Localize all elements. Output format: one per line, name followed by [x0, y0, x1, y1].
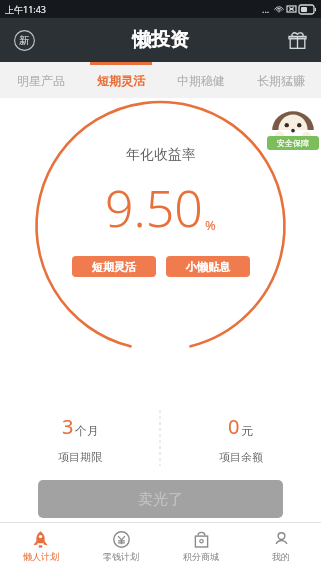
- button[interactable]: 积分商城: [161, 523, 241, 569]
- staticText: ...: [262, 3, 270, 15]
- button[interactable]: 短期灵活: [81, 62, 161, 98]
- staticText: 安全保障: [277, 138, 309, 148]
- button[interactable]: 短期灵活: [72, 256, 156, 277]
- staticText: 懒人计划: [23, 551, 59, 562]
- staticText: 短期灵活: [97, 73, 145, 88]
- staticText: 中期稳健: [177, 73, 225, 88]
- staticText: 小懒贴息: [186, 260, 230, 274]
- staticText: 项目余额: [219, 450, 263, 464]
- button[interactable]: 礼物: [281, 24, 313, 56]
- button[interactable]: 零钱计划: [81, 523, 161, 569]
- staticText: 长期猛赚: [257, 73, 305, 88]
- staticText: 零钱计划: [103, 551, 139, 562]
- staticText: 积分商城: [183, 551, 219, 562]
- staticText: 我的: [272, 551, 290, 562]
- staticText: 项目期限: [58, 450, 102, 464]
- button[interactable]: 小懒贴息: [166, 256, 250, 277]
- staticText: 3: [62, 413, 74, 440]
- staticText: 懒投资: [132, 28, 189, 52]
- staticText: 元: [241, 423, 253, 438]
- staticText: 个月: [75, 423, 99, 438]
- button[interactable]: 长期猛赚: [241, 62, 321, 98]
- staticText: 明星产品: [17, 73, 65, 88]
- button[interactable]: 懒人计划: [0, 523, 81, 569]
- button[interactable]: 新手: [8, 24, 40, 56]
- staticText: 9.50: [105, 174, 203, 242]
- staticText: 年化收益率: [126, 146, 196, 164]
- button[interactable]: 我的: [241, 523, 321, 569]
- button[interactable]: 中期稳健: [161, 62, 241, 98]
- button[interactable]: 安全保障: [267, 104, 319, 150]
- staticText: 新: [19, 34, 29, 47]
- button[interactable]: 卖光了: [38, 480, 283, 518]
- button[interactable]: 明星产品: [0, 62, 81, 98]
- staticText: 卖光了: [138, 490, 183, 509]
- staticText: 上午11:43: [5, 3, 47, 15]
- staticText: 0: [228, 413, 240, 440]
- staticText: 短期灵活: [92, 260, 136, 274]
- staticText: %: [205, 216, 216, 234]
